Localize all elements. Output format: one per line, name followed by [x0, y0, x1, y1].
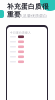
staticText: 今日蛋白质摄入 — [10, 31, 31, 34]
staticText: 每天摄入足量优质蛋白 — [7, 13, 47, 18]
staticText: 补充蛋白质很重要 — [7, 2, 49, 19]
